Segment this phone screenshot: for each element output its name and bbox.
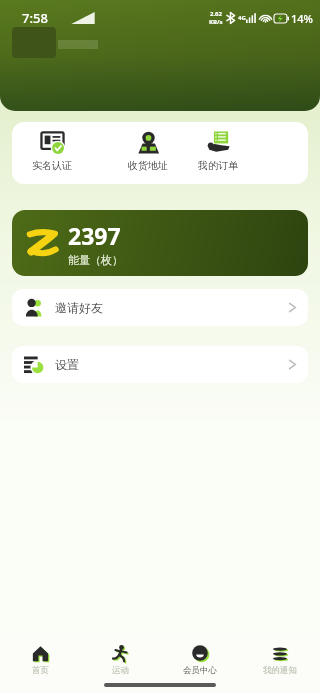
button[interactable]: 实名认证 — [24, 131, 80, 172]
staticText: 2397 — [68, 220, 121, 251]
staticText: 运动 — [112, 665, 129, 676]
staticText: 2.62 — [210, 10, 222, 18]
button[interactable]: 收货地址 — [120, 131, 176, 172]
button[interactable]: 我的订单 — [190, 131, 246, 172]
button[interactable]: 首页 — [0, 645, 80, 680]
staticText: KB/s — [209, 18, 223, 26]
staticText: 14% — [291, 11, 313, 26]
button[interactable]: 2397 — [12, 210, 308, 276]
staticText: 4G — [238, 14, 246, 22]
staticText: 邀请好友 — [55, 300, 103, 315]
button[interactable]: 运动 — [80, 645, 160, 680]
staticText: 实名认证 — [32, 159, 72, 172]
button[interactable]: 邀请好友 — [12, 289, 308, 326]
staticText: 7:58 — [22, 9, 48, 27]
staticText: 首页 — [32, 665, 49, 676]
staticText: 收货地址 — [128, 159, 168, 172]
staticText: 我的通知 — [263, 665, 297, 676]
staticText: 会员中心 — [183, 665, 217, 676]
button[interactable]: 我的通知 — [240, 645, 320, 680]
staticText: 能量（枚） — [68, 253, 123, 267]
staticText: 我的订单 — [198, 159, 238, 172]
button[interactable]: 设置 — [12, 346, 308, 383]
staticText: 设置 — [55, 357, 79, 372]
button[interactable]: 会员中心 — [160, 645, 240, 680]
